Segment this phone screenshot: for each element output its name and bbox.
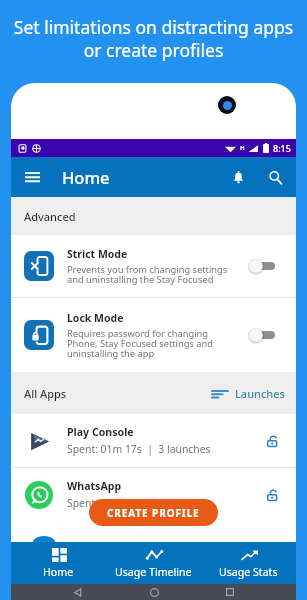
button[interactable]: Usage Stats: [201, 542, 296, 584]
button[interactable]: Lock app: [263, 485, 283, 505]
staticText: Lock Mode: [67, 311, 124, 325]
staticText: All Apps: [24, 386, 67, 401]
staticText: WhatsApp: [67, 479, 122, 493]
staticText: CREATE PROFILE: [107, 506, 200, 520]
button[interactable]: Lock app: [263, 431, 283, 451]
staticText: Usage Timeline: [115, 565, 192, 579]
button[interactable]: Recent apps: [220, 584, 240, 600]
button[interactable]: WhatsApp: [11, 468, 296, 521]
staticText: Usage Stats: [219, 565, 278, 579]
button[interactable]: Play Console: [11, 414, 296, 467]
staticText: Strict Mode: [67, 247, 128, 261]
button[interactable]: Toggle: [249, 325, 275, 345]
button[interactable]: Lock Mode: [11, 298, 296, 372]
button[interactable]: Open navigation menu: [21, 165, 44, 189]
staticText: Requires password for changing Phone, St…: [67, 327, 214, 360]
button[interactable]: Notifications: [225, 164, 251, 190]
button[interactable]: Usage Timeline: [106, 542, 201, 584]
button[interactable]: Back: [67, 584, 87, 600]
button[interactable]: Home: [11, 542, 106, 584]
staticText: Advanced: [24, 209, 76, 224]
staticText: Play Console: [67, 425, 134, 439]
button[interactable]: Launches: [210, 382, 287, 405]
button[interactable]: Home: [144, 584, 164, 600]
staticText: Set limitations on distracting apps or c…: [4, 15, 303, 62]
staticText: H: [240, 144, 245, 152]
button[interactable]: Toggle: [249, 256, 275, 276]
staticText: Home: [43, 565, 74, 579]
staticText: Launches: [235, 386, 285, 401]
button[interactable]: Strict Mode: [11, 235, 296, 297]
button[interactable]: Search: [262, 164, 288, 190]
staticText: Spent: 04m 02s | 7 launches: [67, 496, 211, 510]
staticText: Prevents you from changing settings and …: [67, 263, 228, 286]
staticText: Spent: 01m 17s | 3 launches: [67, 442, 211, 456]
button[interactable]: CREATE PROFILE: [89, 499, 218, 526]
staticText: Home: [62, 166, 110, 188]
staticText: 8:15: [273, 142, 291, 154]
